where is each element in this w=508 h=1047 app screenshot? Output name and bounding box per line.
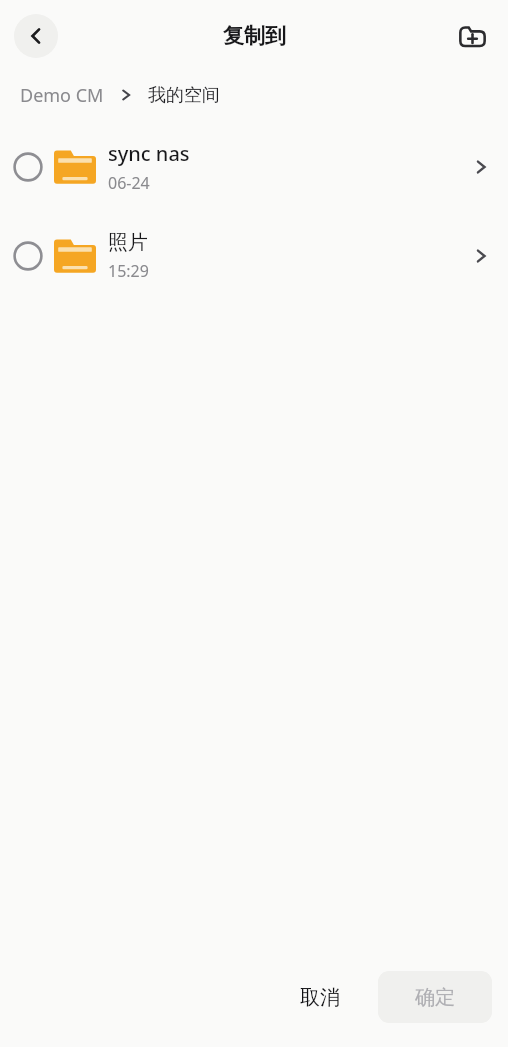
staticText: 照片 bbox=[108, 230, 148, 255]
staticText: sync nas bbox=[108, 140, 190, 167]
staticText: 15:29 bbox=[108, 260, 149, 282]
staticText: 复制到 bbox=[223, 23, 286, 49]
button[interactable]: 取消 bbox=[284, 973, 356, 1022]
staticText: 06-24 bbox=[108, 172, 150, 194]
button[interactable]: New folder bbox=[450, 14, 494, 58]
button[interactable]: 照片 bbox=[0, 211, 508, 300]
button[interactable]: 确定 bbox=[378, 971, 492, 1023]
button[interactable]: 我的空间 bbox=[148, 84, 220, 107]
button[interactable]: Demo CM bbox=[20, 83, 104, 108]
staticText: 取消 bbox=[300, 985, 340, 1010]
staticText: 确定 bbox=[415, 985, 455, 1010]
button[interactable]: Back bbox=[14, 14, 58, 58]
button[interactable]: sync nas bbox=[0, 122, 508, 211]
